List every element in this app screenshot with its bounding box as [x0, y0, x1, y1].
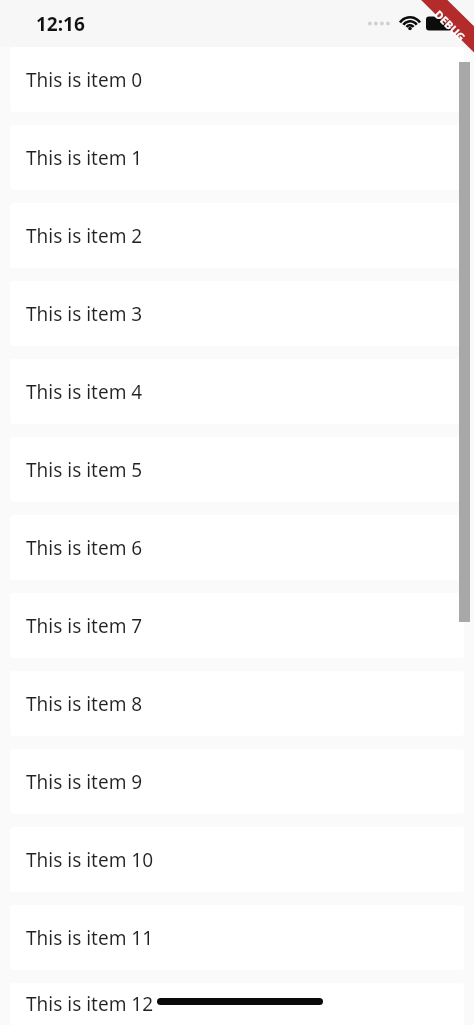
- button[interactable]: This is item 7: [10, 593, 464, 658]
- button[interactable]: This is item 2: [10, 203, 464, 268]
- button[interactable]: This is item 11: [10, 905, 464, 970]
- button[interactable]: This is item 0: [10, 47, 464, 112]
- staticText: This is item 10: [26, 847, 154, 873]
- other: Home: [157, 998, 323, 1005]
- staticText: This is item 12: [26, 991, 154, 1017]
- staticText: This is item 5: [26, 457, 143, 483]
- staticText: This is item 0: [26, 67, 143, 93]
- button[interactable]: This is item 1: [10, 125, 464, 190]
- staticText: This is item 2: [26, 223, 143, 249]
- button[interactable]: This is item 5: [10, 437, 464, 502]
- button[interactable]: This is item 3: [10, 281, 464, 346]
- staticText: DEBUG: [431, 7, 469, 44]
- staticText: This is item 9: [26, 769, 143, 795]
- staticText: This is item 4: [26, 379, 143, 405]
- button[interactable]: This is item 9: [10, 749, 464, 814]
- staticText: This is item 11: [26, 925, 154, 951]
- button[interactable]: This is item 12: [10, 983, 464, 1025]
- button[interactable]: This is item 10: [10, 827, 464, 892]
- staticText: 12:16: [36, 11, 85, 37]
- staticText: This is item 3: [26, 301, 143, 327]
- staticText: This is item 1: [26, 145, 143, 171]
- staticText: This is item 8: [26, 691, 143, 717]
- button[interactable]: This is item 4: [10, 359, 464, 424]
- button[interactable]: This is item 8: [10, 671, 464, 736]
- button[interactable]: This is item 6: [10, 515, 464, 580]
- staticText: This is item 7: [26, 613, 143, 639]
- staticText: This is item 6: [26, 535, 143, 561]
